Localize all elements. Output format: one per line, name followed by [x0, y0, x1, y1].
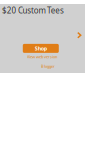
button[interactable]: Shop: [23, 44, 59, 53]
staticText: Shop: [35, 45, 47, 52]
staticText: $20 Custom Tees: [2, 5, 64, 16]
button[interactable]: Next message: [74, 29, 85, 42]
button[interactable]: View web version: [27, 54, 57, 59]
staticText: View web version: [27, 54, 57, 59]
staticText: Blogger: [41, 63, 55, 69]
button[interactable]: Blogger: [41, 63, 55, 69]
